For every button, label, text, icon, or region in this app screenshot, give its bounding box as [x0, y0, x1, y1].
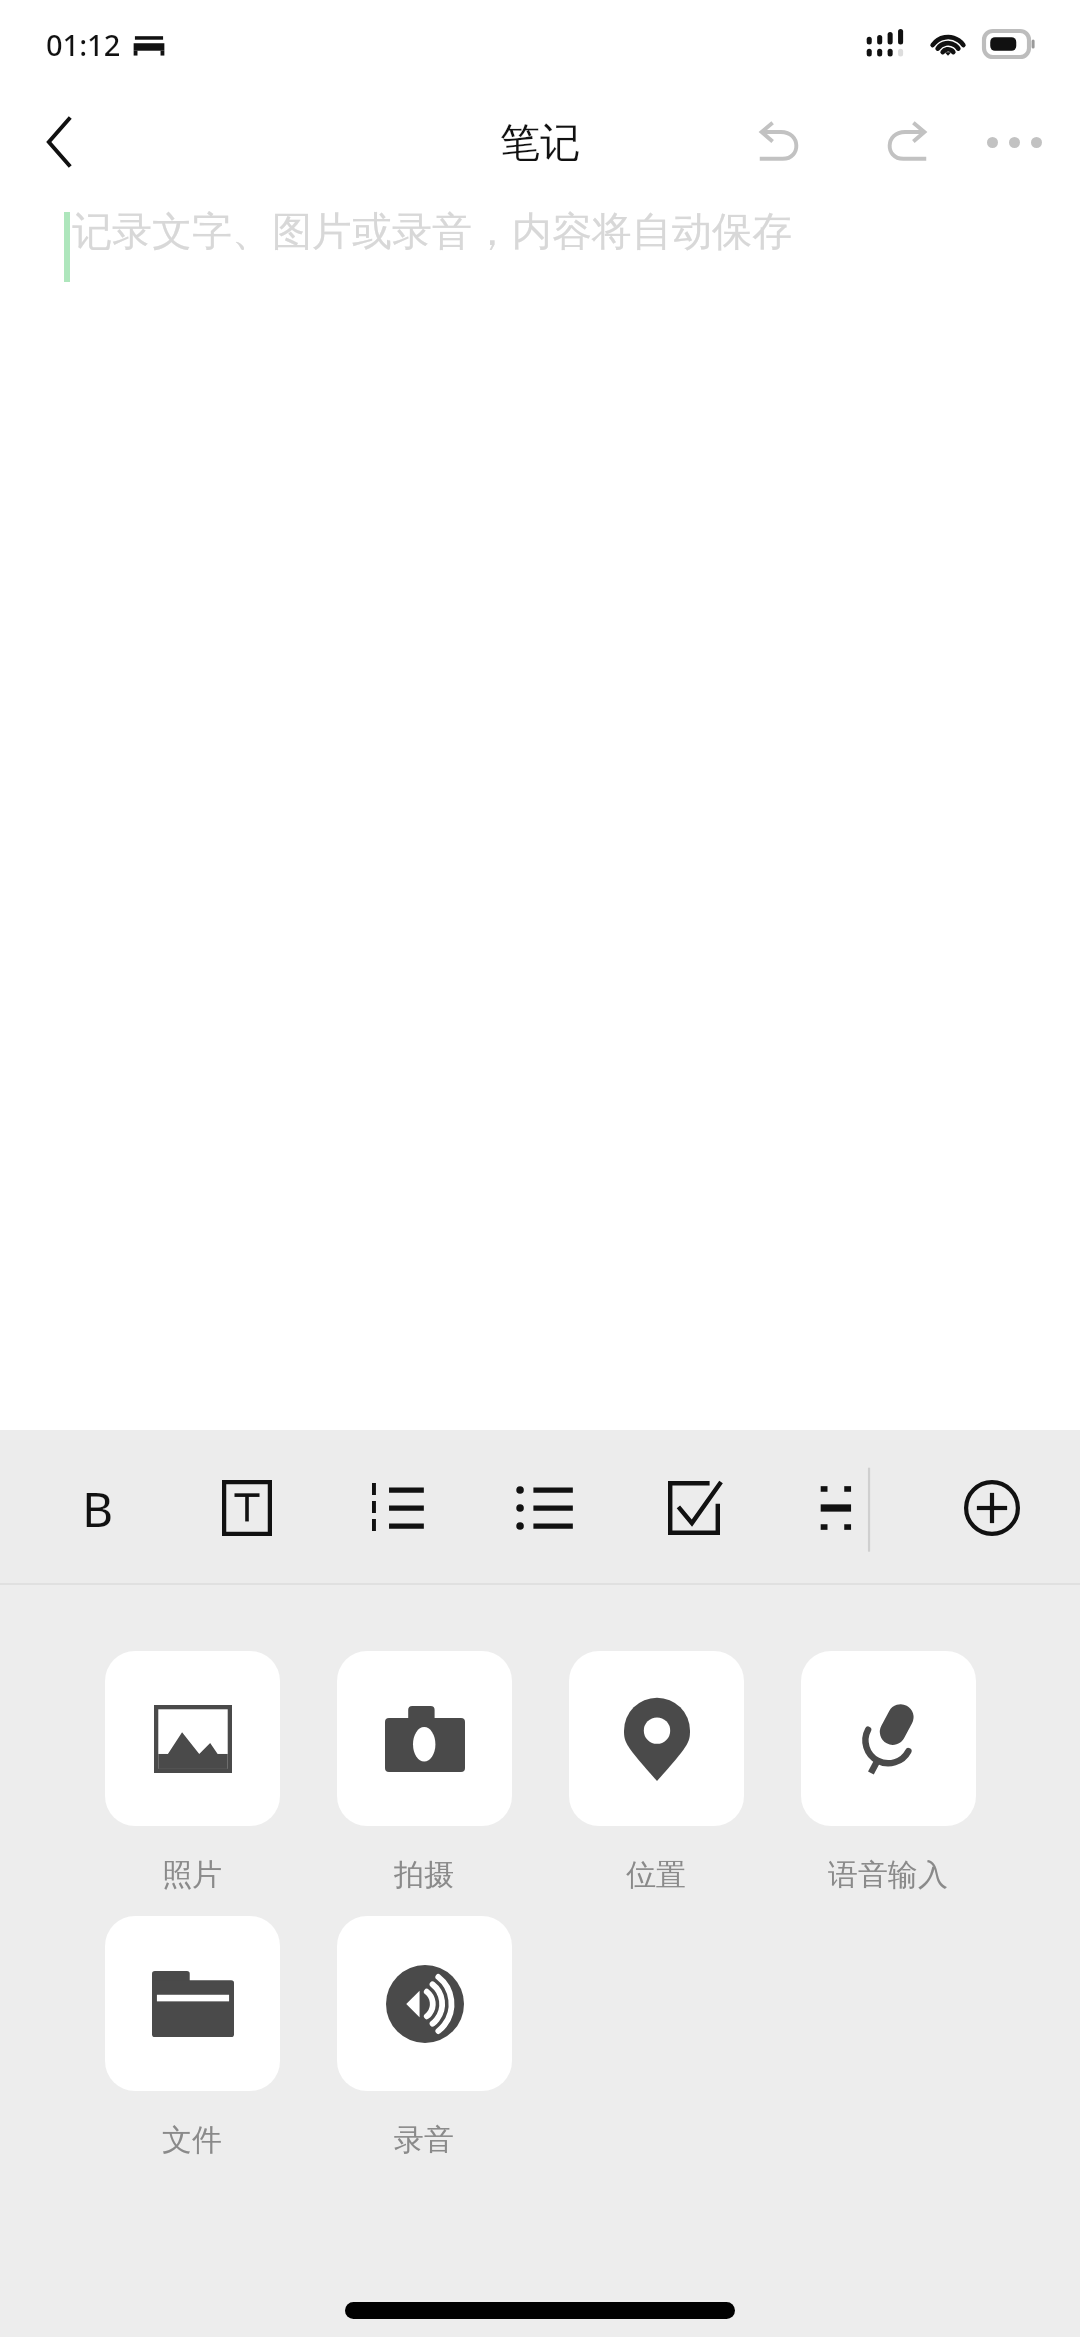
button[interactable]: Text style	[205, 1466, 289, 1550]
button[interactable]: 照片	[76, 1651, 308, 1894]
staticText: 语音输入	[828, 1856, 948, 1894]
button[interactable]: 文件	[76, 1916, 308, 2159]
staticText: 文件	[162, 2121, 222, 2159]
button[interactable]: Bullet list	[503, 1466, 587, 1550]
button[interactable]: 记录文字、图片或录音，内容将自动保存	[64, 206, 1040, 276]
button[interactable]: 录音	[308, 1916, 540, 2159]
button[interactable]: Add attachment	[950, 1466, 1034, 1550]
staticText: 录音	[394, 2121, 454, 2159]
button[interactable]: 语音输入	[772, 1651, 1004, 1894]
staticText: 笔记	[500, 117, 580, 167]
button[interactable]: Redo	[864, 100, 948, 184]
button[interactable]: Line spacing	[801, 1466, 885, 1550]
staticText: 01:12	[46, 25, 121, 64]
button[interactable]: More options	[974, 102, 1054, 182]
button[interactable]: 位置	[540, 1651, 772, 1894]
staticText: 记录文字、图片或录音，内容将自动保存	[72, 206, 792, 256]
staticText: B	[82, 1476, 114, 1541]
button[interactable]: Bold	[56, 1466, 140, 1550]
button[interactable]: 拍摄	[308, 1651, 540, 1894]
staticText: 拍摄	[394, 1856, 454, 1894]
button[interactable]: Checklist	[652, 1466, 736, 1550]
button[interactable]: Numbered list	[354, 1466, 438, 1550]
button[interactable]: Undo	[738, 100, 822, 184]
staticText: 位置	[626, 1856, 686, 1894]
staticText: 照片	[162, 1856, 222, 1894]
button[interactable]: Back	[24, 106, 96, 178]
